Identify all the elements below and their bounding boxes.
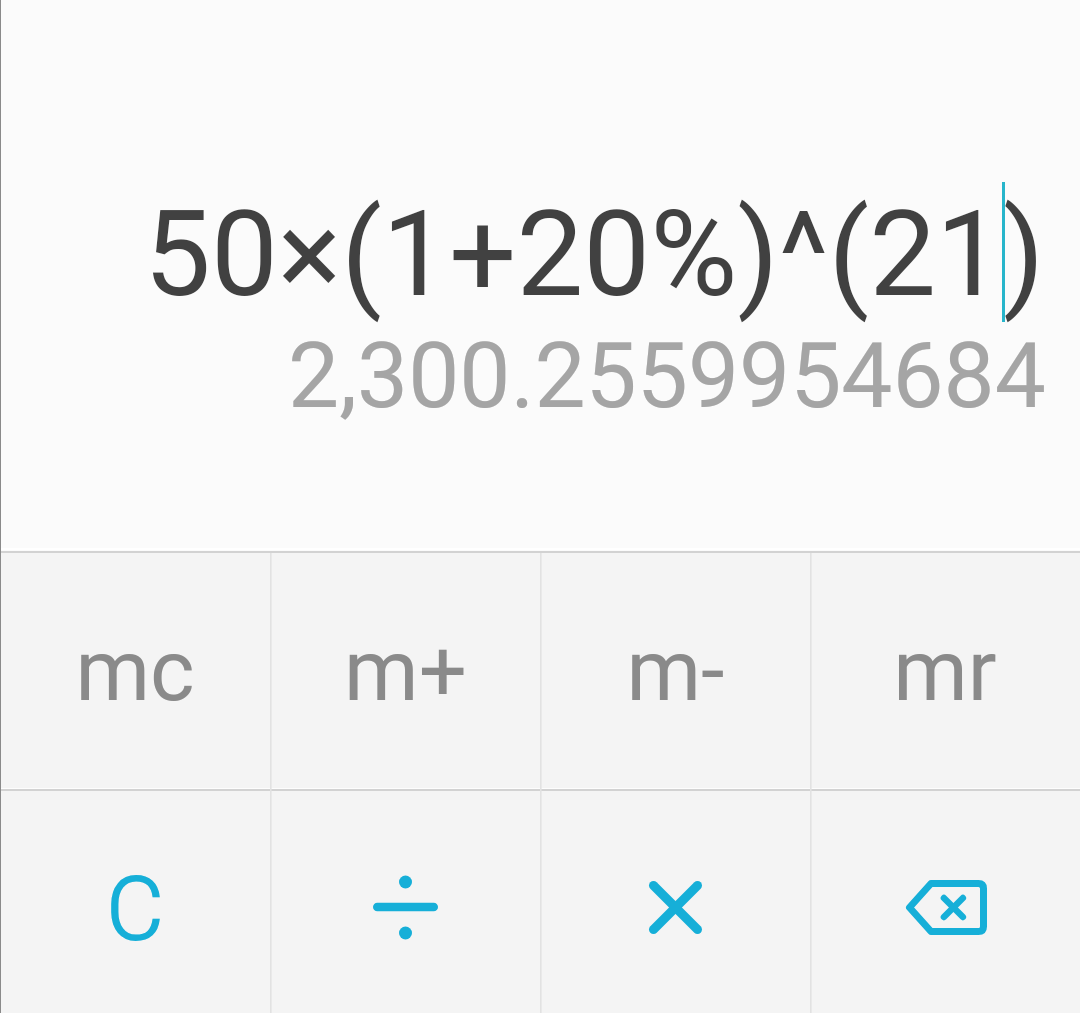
button[interactable]: Divide	[270, 791, 540, 1013]
staticText: 50×(1+20%)^(21	[144, 185, 1003, 324]
staticText: 2,300.2559954684	[288, 323, 1046, 430]
staticText: m+	[344, 621, 467, 721]
button[interactable]: m+	[270, 553, 540, 788]
button[interactable]: Backspace	[810, 791, 1080, 1013]
staticText: C	[106, 857, 164, 960]
staticText: C	[106, 857, 164, 960]
button[interactable]: Multiply	[540, 791, 810, 1013]
staticText: mc	[75, 621, 195, 721]
button[interactable]: mr	[810, 553, 1080, 788]
button[interactable]: C	[0, 791, 270, 1013]
staticText: )	[1003, 185, 1045, 324]
button[interactable]: m-	[540, 553, 810, 788]
staticText: m-	[626, 621, 725, 721]
button[interactable]: mc	[0, 553, 270, 788]
staticText: mr	[893, 621, 997, 721]
